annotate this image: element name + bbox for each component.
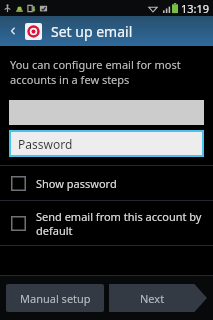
button[interactable]: Password	[11, 132, 202, 155]
button[interactable]: Next	[109, 284, 207, 312]
button[interactable]: Show password	[0, 166, 213, 200]
button[interactable]: Send email from this account by default	[0, 201, 213, 245]
staticText: Manual setup	[20, 291, 91, 306]
staticText: Send email from this account by default	[36, 209, 202, 238]
staticText: Show password	[36, 176, 117, 191]
button[interactable]: Navigate up	[0, 16, 25, 46]
staticText: 13:19	[181, 1, 210, 16]
staticText: Password	[18, 136, 73, 152]
staticText: You can configure email for most account…	[10, 57, 181, 87]
staticText: Set up email	[51, 22, 133, 41]
button[interactable]: Manual setup	[6, 284, 104, 312]
staticText: Next	[140, 291, 165, 306]
